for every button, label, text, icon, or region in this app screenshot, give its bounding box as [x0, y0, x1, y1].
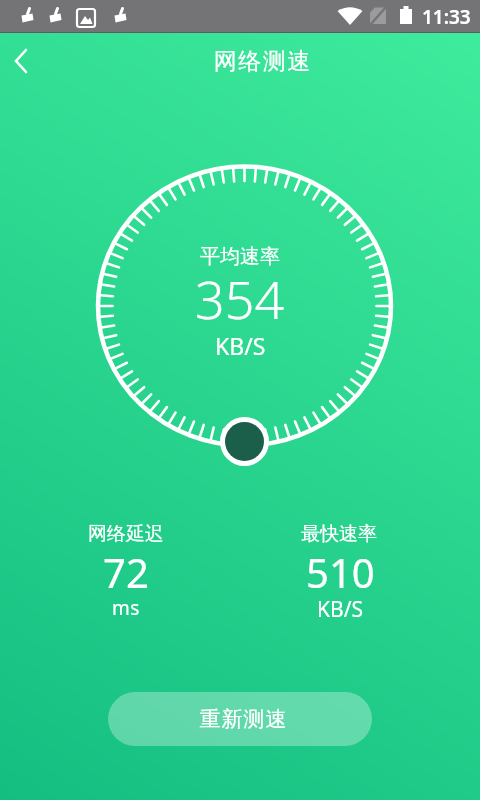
- staticText: 354: [195, 263, 285, 334]
- staticText: 72: [103, 545, 149, 599]
- staticText: KB/S: [317, 595, 363, 624]
- staticText: KB/S: [215, 330, 266, 361]
- staticText: 重新测速: [199, 706, 287, 732]
- staticText: 网络测速: [213, 47, 311, 76]
- staticText: 510: [306, 545, 375, 599]
- button[interactable]: 重新测速: [108, 692, 372, 746]
- staticText: ms: [112, 595, 140, 621]
- staticText: 最快速率: [301, 522, 377, 546]
- staticText: 平均速率: [200, 244, 280, 269]
- button[interactable]: [0, 37, 48, 85]
- staticText: 网络延迟: [88, 522, 164, 546]
- staticText: 11:33: [422, 4, 471, 30]
